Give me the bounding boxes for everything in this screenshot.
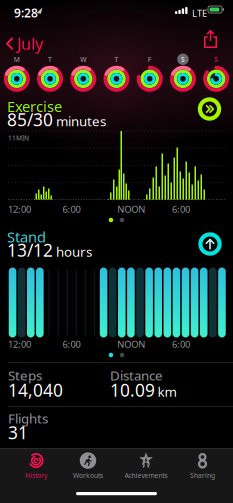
staticText: 85/30 xyxy=(7,108,53,131)
staticText: Sharing xyxy=(190,471,215,480)
staticText: 14,040 xyxy=(8,378,63,401)
button[interactable]: Achievements xyxy=(124,452,167,480)
button[interactable] xyxy=(136,65,164,93)
staticText: 6:00 xyxy=(172,203,190,215)
staticText: M xyxy=(14,55,20,64)
button[interactable] xyxy=(169,65,197,93)
button[interactable] xyxy=(198,232,221,255)
staticText: T xyxy=(48,55,52,64)
button[interactable] xyxy=(69,65,97,93)
button[interactable] xyxy=(36,65,64,93)
button[interactable]: July xyxy=(6,33,43,54)
button[interactable] xyxy=(204,30,217,48)
staticText: Exercise xyxy=(7,96,62,116)
staticText: hours xyxy=(56,243,92,260)
staticText: T xyxy=(114,55,118,64)
staticText: Steps xyxy=(8,366,42,384)
staticText: Flights xyxy=(8,409,48,427)
staticText: Stand xyxy=(7,227,46,246)
staticText: Achievements xyxy=(124,471,167,480)
staticText: 12:00 xyxy=(8,203,31,215)
staticText: 9:28 xyxy=(14,5,38,21)
staticText: 11MIN xyxy=(8,133,29,142)
staticText: 6:00 xyxy=(63,338,81,350)
staticText: NOON xyxy=(117,203,145,215)
staticText: 13/12 xyxy=(7,238,53,261)
staticText: S xyxy=(181,55,185,64)
staticText: 6:00 xyxy=(172,338,190,350)
staticText: minutes xyxy=(56,112,106,130)
staticText: 6:00 xyxy=(63,203,81,215)
staticText: Distance xyxy=(110,366,163,384)
staticText: F xyxy=(148,55,152,64)
staticText: W xyxy=(80,55,86,64)
staticText: LTE xyxy=(192,7,207,19)
staticText: Workouts xyxy=(73,471,103,480)
button[interactable] xyxy=(3,65,31,93)
button[interactable]: Sharing xyxy=(190,452,215,480)
staticText: S xyxy=(214,55,218,64)
staticText: July xyxy=(17,33,43,54)
button[interactable] xyxy=(198,97,221,120)
button[interactable]: History xyxy=(25,452,47,480)
button[interactable] xyxy=(202,65,230,93)
staticText: NOON xyxy=(117,338,145,350)
staticText: 10.09 xyxy=(110,378,155,401)
button[interactable]: Workouts xyxy=(73,452,103,480)
button[interactable] xyxy=(102,65,130,93)
staticText: History xyxy=(25,471,47,480)
staticText: 31 xyxy=(8,421,28,444)
staticText: km xyxy=(157,383,176,400)
staticText: 12:00 xyxy=(8,338,31,350)
